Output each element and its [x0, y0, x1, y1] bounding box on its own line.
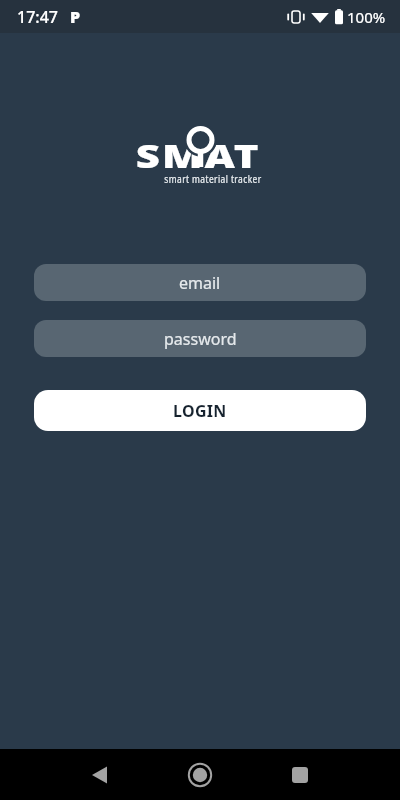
button[interactable] [176, 751, 224, 799]
staticText: 100% [347, 7, 386, 27]
staticText: 17:47 [17, 6, 58, 28]
staticText: P [70, 6, 81, 28]
button[interactable] [76, 751, 124, 799]
staticText: SMAT [136, 135, 261, 177]
button[interactable]: email [34, 264, 366, 301]
staticText: smart material tracker [164, 172, 262, 186]
button[interactable] [276, 751, 324, 799]
staticText: password [164, 328, 237, 350]
button[interactable]: LOGIN [34, 390, 366, 431]
staticText: email [179, 272, 221, 294]
staticText: LOGIN [173, 400, 227, 422]
button[interactable]: password [34, 320, 366, 357]
